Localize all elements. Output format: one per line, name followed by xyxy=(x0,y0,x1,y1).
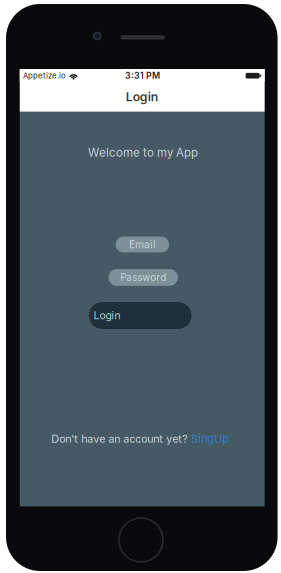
staticText: Welcome to my App xyxy=(88,146,198,159)
staticText: Login xyxy=(126,89,159,104)
staticText: Password xyxy=(120,271,166,283)
staticText: SingUp xyxy=(191,432,229,445)
staticText: Don't have an account yet? xyxy=(51,432,188,445)
staticText: Email xyxy=(129,238,156,251)
staticText: Appetize.io xyxy=(23,71,66,80)
staticText: 3:31 PM xyxy=(125,70,160,81)
button[interactable]: Login xyxy=(89,302,192,329)
button[interactable]: Email xyxy=(116,237,169,252)
button[interactable]: Password xyxy=(108,269,178,286)
button[interactable]: SingUp xyxy=(191,432,229,445)
staticText: Login xyxy=(94,309,121,322)
